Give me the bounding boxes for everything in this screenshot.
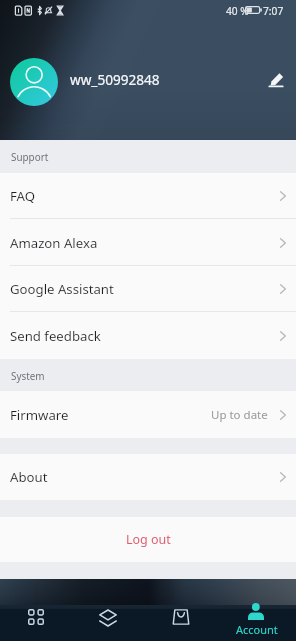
button[interactable]: Amazon Alexa (0, 219, 296, 266)
staticText: Google Assistant (10, 280, 114, 298)
staticText: Up to date (211, 407, 268, 423)
staticText: FAQ (10, 187, 36, 205)
button[interactable]: FAQ (0, 173, 296, 219)
button[interactable]: Shop (153, 579, 209, 641)
staticText: Log out (126, 531, 171, 548)
button[interactable]: Google Assistant (0, 266, 296, 312)
button[interactable]: Log out (0, 517, 296, 562)
staticText: Account (236, 622, 278, 637)
button[interactable]: Edit profile (258, 62, 294, 98)
button[interactable]: Firmware (0, 391, 296, 438)
button[interactable]: Devices (8, 579, 64, 641)
staticText: About (10, 468, 48, 486)
staticText: Support (11, 150, 49, 163)
staticText: System (11, 369, 45, 382)
button[interactable]: About (0, 454, 296, 500)
staticText: Amazon Alexa (10, 234, 98, 252)
button[interactable]: Account (222, 579, 296, 641)
button[interactable]: Send feedback (0, 312, 296, 359)
button[interactable]: Scenes (79, 579, 137, 641)
staticText: Firmware (10, 406, 69, 424)
staticText: Send feedback (10, 327, 101, 345)
staticText: 7:07 (263, 4, 284, 18)
staticText: 40 % (226, 4, 249, 18)
staticText: ww_50992848 (70, 70, 160, 89)
